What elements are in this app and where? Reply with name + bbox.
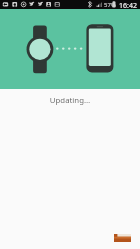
staticText: 57% xyxy=(104,1,116,9)
staticText: Updating… xyxy=(0,95,140,106)
button[interactable]: Vendor logo xyxy=(114,234,131,242)
staticText: 16:42 xyxy=(119,1,137,10)
